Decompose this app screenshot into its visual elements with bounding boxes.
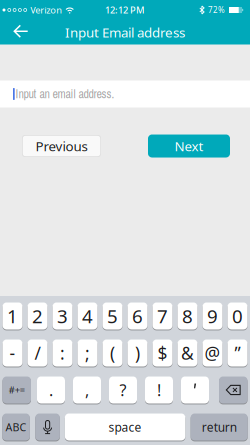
staticText: 4 [82, 304, 93, 328]
button[interactable]: return [191, 413, 248, 440]
staticText: : [60, 341, 65, 364]
staticText: Verizon [30, 4, 62, 16]
button[interactable]: 6 [127, 302, 147, 329]
staticText: ABC [6, 420, 27, 434]
staticText: Next [174, 137, 203, 155]
button[interactable]: Back [0, 20, 36, 44]
staticText: ! [157, 379, 161, 401]
staticText: Previous [35, 137, 87, 155]
button[interactable]: ’ [181, 376, 209, 403]
staticText: & [181, 341, 194, 364]
staticText: / [34, 341, 40, 364]
staticText: @ [204, 341, 220, 364]
staticText: space [109, 419, 142, 435]
staticText: ; [85, 341, 90, 364]
button[interactable]: ( [102, 339, 122, 366]
staticText: , [85, 379, 89, 401]
button[interactable]: ) [127, 339, 147, 366]
staticText: 12:12 PM [105, 4, 145, 16]
staticText: 3 [57, 304, 68, 328]
staticText: $ [157, 341, 167, 364]
staticText: 1 [7, 304, 18, 328]
button[interactable]: ABC [2, 413, 30, 440]
button[interactable]: Previous [22, 135, 101, 157]
button[interactable]: 2 [27, 302, 47, 329]
staticText: ” [234, 341, 240, 364]
button[interactable]: , [73, 376, 101, 403]
staticText: . [49, 379, 53, 401]
staticText: Input an email address. [15, 86, 114, 102]
button[interactable]: / [27, 339, 47, 366]
button[interactable]: Delete [219, 376, 247, 403]
button[interactable]: 8 [177, 302, 197, 329]
button[interactable]: Dictate [35, 413, 60, 440]
button[interactable]: 9 [202, 302, 222, 329]
staticText: 2 [32, 304, 43, 328]
button[interactable]: $ [152, 339, 172, 366]
button[interactable]: space [65, 413, 185, 440]
staticText: return [202, 419, 237, 435]
button[interactable]: 5 [102, 302, 122, 329]
button[interactable]: - [2, 339, 22, 366]
staticText: Input Email address [65, 23, 185, 41]
button[interactable]: ! [145, 376, 173, 403]
button[interactable]: Next [148, 134, 230, 157]
button[interactable]: 4 [77, 302, 97, 329]
button[interactable]: @ [202, 339, 222, 366]
staticText: 72% [208, 5, 225, 15]
button[interactable]: : [52, 339, 72, 366]
staticText: - [9, 341, 15, 364]
staticText: 6 [132, 304, 143, 328]
button[interactable]: . [37, 376, 65, 403]
button[interactable]: #+= [2, 376, 31, 403]
button[interactable]: ” [227, 339, 247, 366]
button[interactable]: 3 [52, 302, 72, 329]
staticText: ? [119, 379, 126, 401]
button[interactable]: 1 [2, 302, 22, 329]
staticText: ) [135, 341, 140, 364]
button[interactable]: 7 [152, 302, 172, 329]
button[interactable]: 0 [227, 302, 247, 329]
button[interactable]: ? [109, 376, 137, 403]
staticText: 7 [157, 304, 168, 328]
staticText: ( [110, 341, 115, 364]
staticText: 5 [107, 304, 118, 328]
staticText: 8 [182, 304, 193, 328]
button[interactable]: ; [77, 339, 97, 366]
button[interactable]: & [177, 339, 197, 366]
staticText: #+= [9, 384, 25, 396]
staticText: 0 [232, 304, 243, 328]
staticText: 9 [207, 304, 218, 328]
